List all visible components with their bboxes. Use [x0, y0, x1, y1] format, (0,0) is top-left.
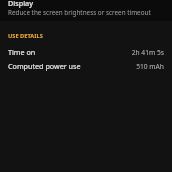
staticText: 510 mAh [136, 62, 164, 71]
button[interactable]: USE DETAILS [0, 32, 172, 40]
button[interactable]: Display settings [0, 0, 172, 21]
staticText: USE DETAILS [8, 32, 43, 40]
staticText: Computed power use [8, 61, 81, 71]
button[interactable]: Computed power use [0, 59, 172, 73]
staticText: 2h 41m 5s [131, 48, 164, 57]
staticText: Display [8, 0, 33, 8]
staticText: Reduce the screen brightness or screen t… [8, 8, 151, 17]
button[interactable]: Time on [0, 45, 172, 59]
staticText: Time on [8, 47, 36, 57]
